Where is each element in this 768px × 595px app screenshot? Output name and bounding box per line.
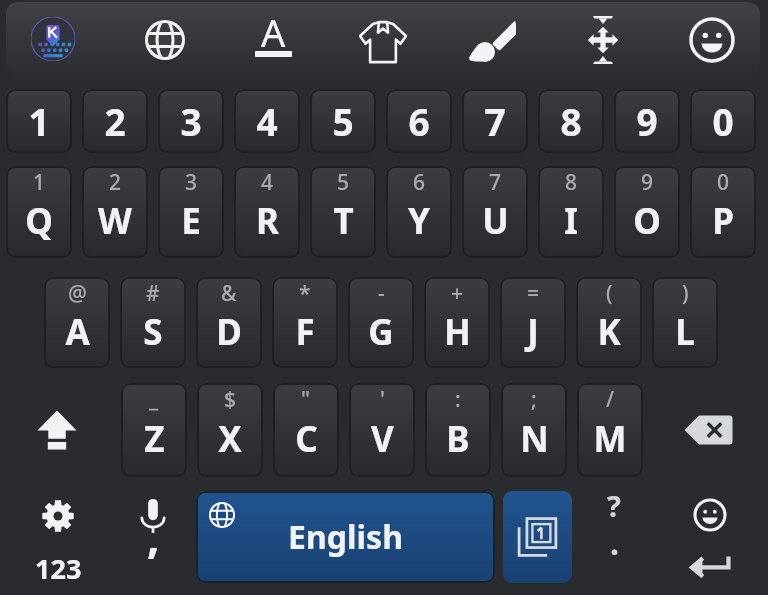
button[interactable]: Resize keyboard <box>579 16 627 64</box>
staticText: 2 <box>104 96 126 146</box>
button[interactable]: ; <box>501 383 567 477</box>
button[interactable]: @ <box>44 277 110 368</box>
button[interactable]: . <box>586 524 642 574</box>
button[interactable]: " <box>273 383 339 477</box>
button[interactable]: Emoji <box>688 16 736 64</box>
staticText: Z <box>144 415 165 463</box>
button[interactable]: & <box>196 277 262 368</box>
button[interactable]: 8 <box>538 89 604 153</box>
button[interactable]: Themes <box>359 16 407 64</box>
staticText: @ <box>68 279 87 308</box>
staticText: T <box>333 197 354 245</box>
button[interactable]: = <box>500 277 566 368</box>
staticText: 4 <box>256 96 278 146</box>
button[interactable]: ? <box>586 482 642 528</box>
staticText: $ <box>224 385 237 414</box>
button[interactable]: Enter <box>682 541 738 593</box>
staticText: : <box>455 385 461 414</box>
button[interactable]: 5 <box>310 89 376 153</box>
button[interactable]: 6 <box>386 89 452 153</box>
staticText: K <box>597 308 621 356</box>
button[interactable]: - <box>348 277 414 368</box>
button[interactable]: / <box>577 383 643 477</box>
button[interactable]: * <box>272 277 338 368</box>
staticText: ' <box>380 385 385 414</box>
staticText: 2 <box>109 168 122 197</box>
button[interactable]: 4 <box>234 89 300 153</box>
staticText: ) <box>682 279 689 308</box>
staticText: C <box>295 415 318 463</box>
button[interactable]: $ <box>197 383 263 477</box>
button[interactable]: Brush <box>468 16 516 64</box>
staticText: 1 <box>28 96 50 146</box>
staticText: English <box>288 515 403 559</box>
staticText: V <box>371 415 394 463</box>
button[interactable]: 1 <box>6 89 72 153</box>
button[interactable]: : <box>425 383 491 477</box>
button[interactable]: 2 <box>82 89 148 153</box>
staticText: . <box>610 524 619 565</box>
staticText: & <box>221 279 237 308</box>
staticText: # <box>146 279 160 308</box>
button[interactable]: 2 <box>82 166 148 258</box>
button[interactable]: 9 <box>614 89 680 153</box>
staticText: + <box>451 279 464 308</box>
staticText: B <box>446 415 470 463</box>
button[interactable]: Backspace <box>674 395 746 465</box>
button[interactable]: 3 <box>158 89 224 153</box>
button[interactable]: Text formatting <box>249 10 297 66</box>
button[interactable]: 7 <box>462 89 528 153</box>
button[interactable]: ( <box>576 277 642 368</box>
staticText: R <box>256 197 279 245</box>
button[interactable]: Voice input <box>122 487 184 545</box>
button[interactable]: 5 <box>310 166 376 258</box>
staticText: 6 <box>413 168 426 197</box>
button[interactable]: Switch window <box>503 491 572 583</box>
button[interactable]: , <box>122 512 184 568</box>
staticText: 8 <box>560 96 582 146</box>
staticText: / <box>606 385 615 414</box>
staticText: Q <box>25 197 53 245</box>
staticText: I <box>564 197 578 245</box>
button[interactable]: 0 <box>690 89 756 153</box>
button[interactable]: 6 <box>386 166 452 258</box>
button[interactable]: + <box>424 277 490 368</box>
staticText: _ <box>149 385 159 414</box>
button[interactable]: 123 <box>26 544 90 592</box>
staticText: 8 <box>565 168 578 197</box>
button[interactable]: 4 <box>234 166 300 258</box>
button[interactable]: English <box>196 491 495 583</box>
staticText: " <box>301 385 311 414</box>
button[interactable]: Keyboard app <box>31 17 75 61</box>
staticText: 0 <box>712 96 734 146</box>
staticText: S <box>143 308 163 356</box>
button[interactable]: 1 <box>6 166 72 258</box>
button[interactable]: 8 <box>538 166 604 258</box>
staticText: 9 <box>641 168 654 197</box>
button[interactable]: 7 <box>462 166 528 258</box>
staticText: 0 <box>717 168 730 197</box>
button[interactable]: _ <box>121 383 187 477</box>
staticText: ? <box>607 486 621 525</box>
button[interactable]: # <box>120 277 186 368</box>
button[interactable]: Change language <box>141 16 189 64</box>
staticText: E <box>181 197 201 245</box>
staticText: O <box>633 197 661 245</box>
staticText: 1 <box>33 168 46 197</box>
button[interactable]: 3 <box>158 166 224 258</box>
button[interactable]: ) <box>652 277 718 368</box>
button[interactable]: ' <box>349 383 415 477</box>
button[interactable]: Emoji <box>682 489 738 541</box>
staticText: 5 <box>332 96 354 146</box>
staticText: H <box>444 308 471 356</box>
staticText: A <box>65 308 90 356</box>
staticText: 3 <box>180 96 202 146</box>
staticText: P <box>712 197 734 245</box>
staticText: G <box>368 308 394 356</box>
button[interactable]: Shift <box>22 395 92 465</box>
button[interactable]: Settings <box>26 488 90 544</box>
button[interactable]: 9 <box>614 166 680 258</box>
button[interactable]: 0 <box>690 166 756 258</box>
staticText: D <box>216 308 242 356</box>
staticText: A <box>261 10 286 58</box>
